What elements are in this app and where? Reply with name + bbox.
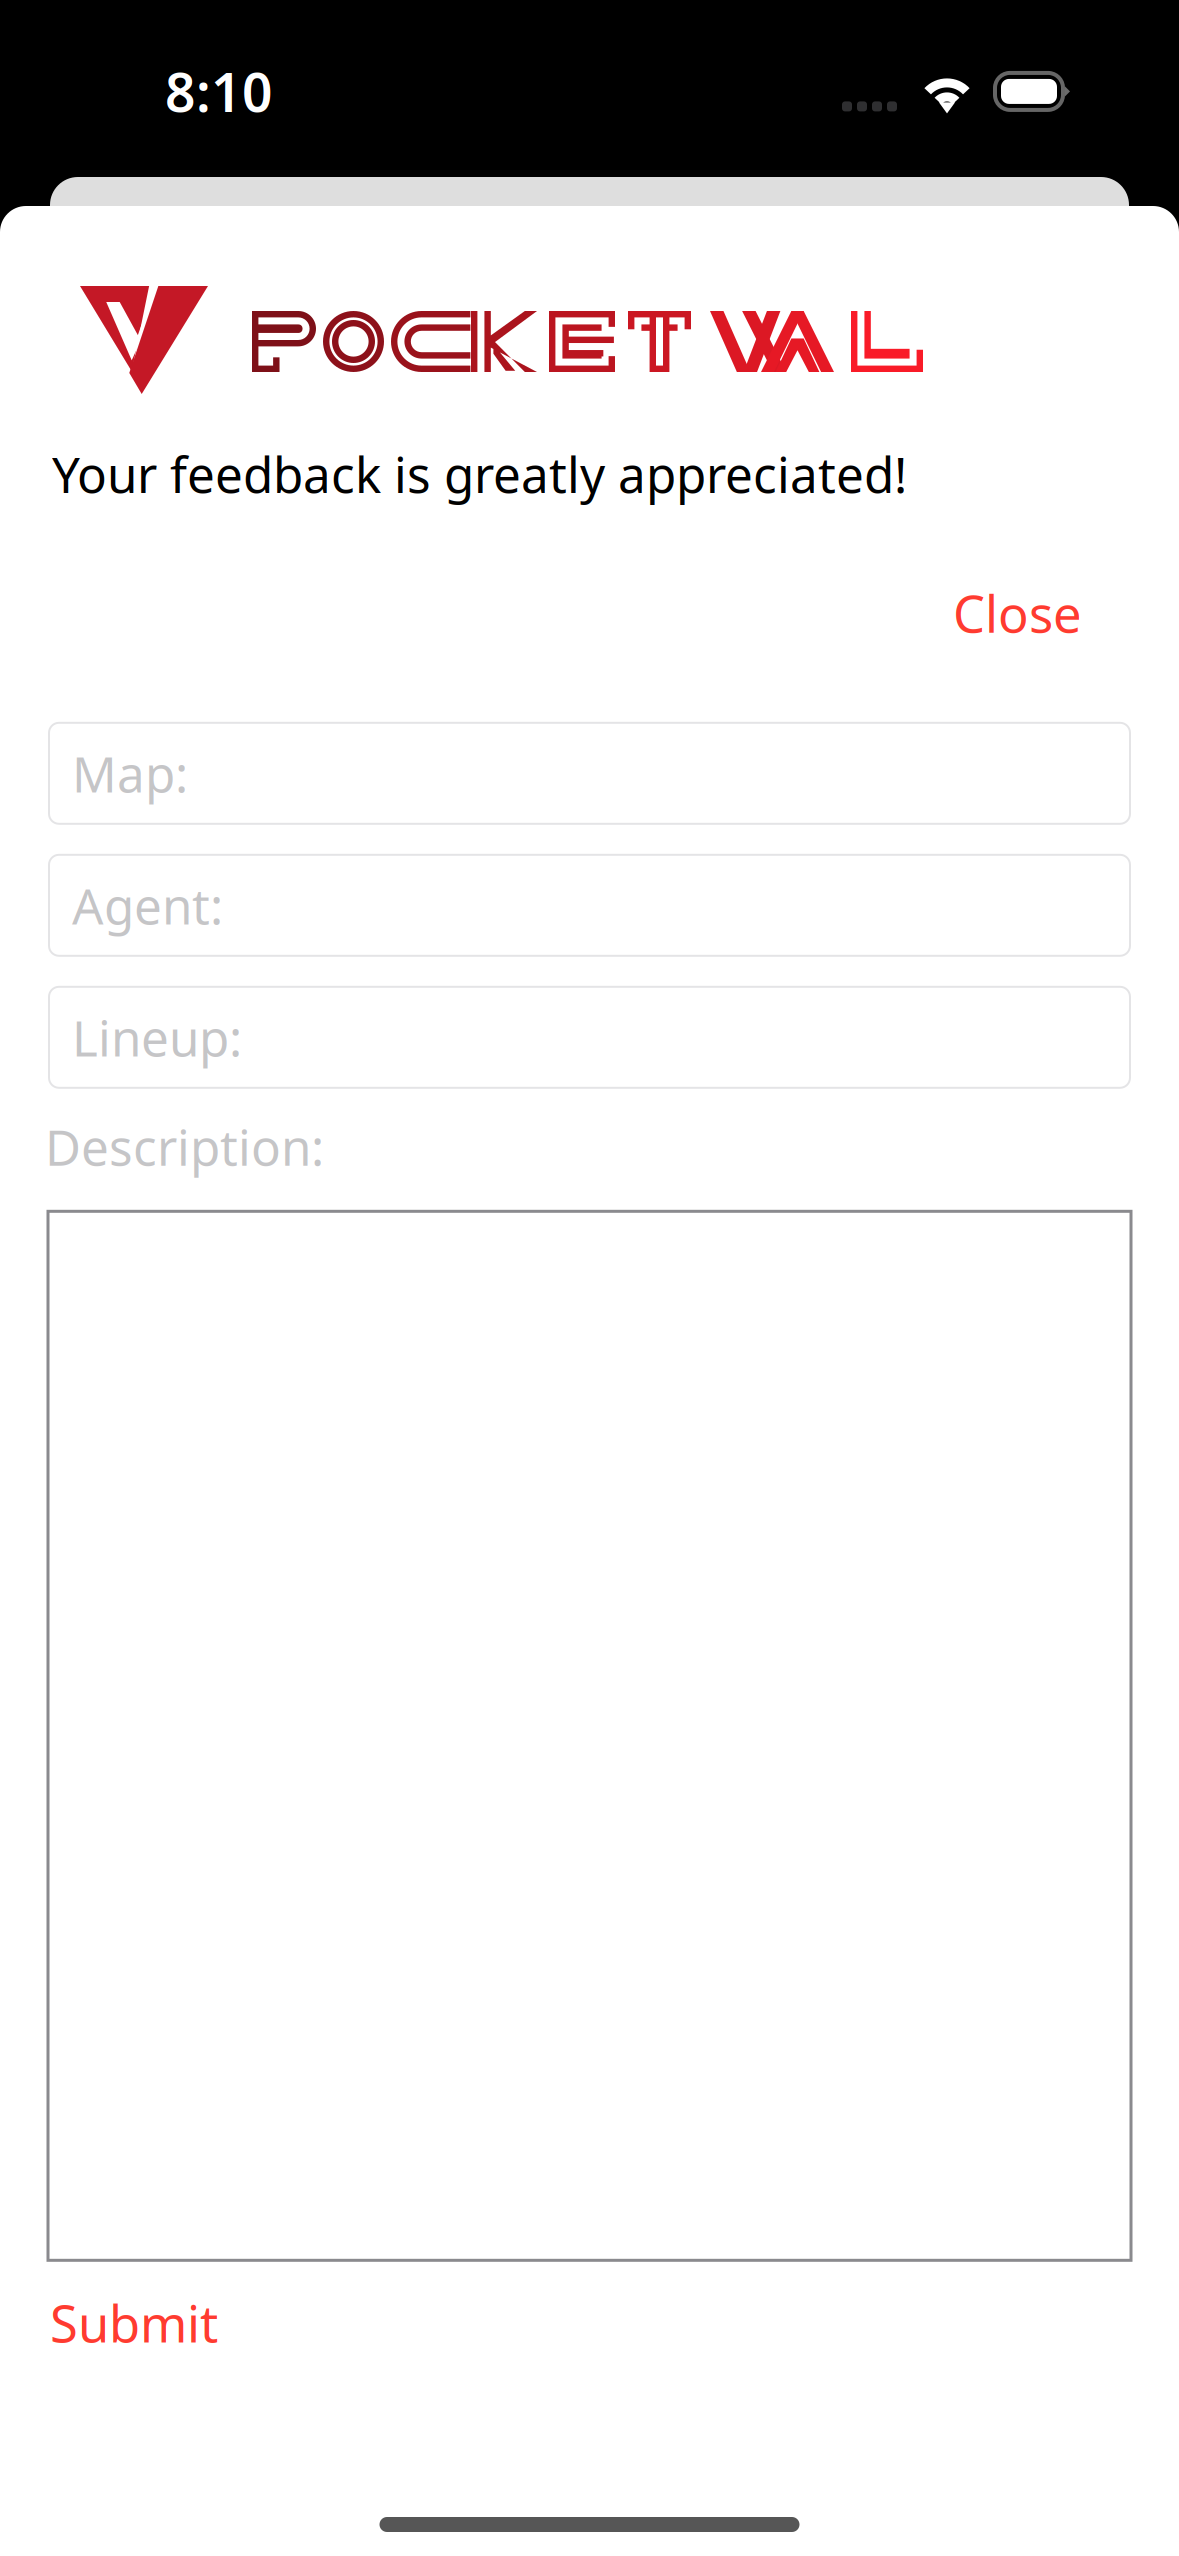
staticText: Close xyxy=(953,579,1082,647)
staticText: Map: xyxy=(72,740,188,806)
staticText: Description: xyxy=(45,1114,324,1179)
staticText: 8:10 xyxy=(165,56,273,127)
staticText: Lineup: xyxy=(72,1004,242,1070)
staticText: Agent: xyxy=(72,872,223,938)
button[interactable]: Close xyxy=(943,571,1092,655)
staticText: Submit xyxy=(50,2289,218,2357)
staticText: Your feedback is greatly appreciated! xyxy=(52,441,907,506)
button[interactable]: Submit xyxy=(40,2281,228,2365)
